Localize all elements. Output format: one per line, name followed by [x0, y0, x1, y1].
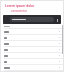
staticText: Lorem ipsum dolor [5, 4, 35, 8]
button[interactable] [1, 35, 63, 41]
button[interactable]: More options [55, 18, 59, 22]
staticText: consectetur [11, 9, 28, 13]
button[interactable] [1, 47, 63, 53]
button[interactable] [1, 53, 63, 59]
button[interactable] [1, 65, 63, 71]
button[interactable] [10, 17, 54, 22]
button[interactable] [1, 41, 63, 47]
button[interactable] [1, 29, 63, 35]
button[interactable] [1, 59, 63, 65]
